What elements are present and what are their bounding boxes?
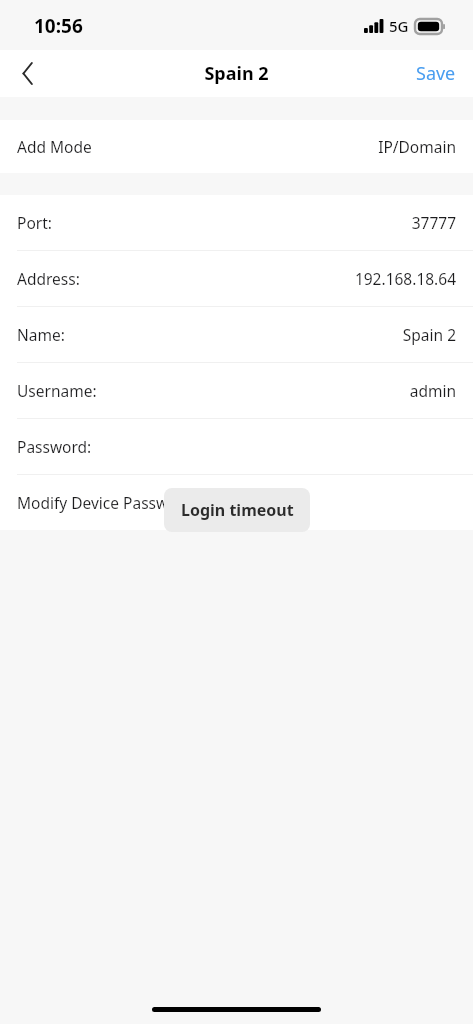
staticText: Save: [416, 61, 456, 86]
staticText: Modify Device Password: [17, 492, 194, 513]
button[interactable]: Back: [0, 50, 56, 97]
staticText: Address:: [17, 268, 80, 289]
staticText: 37777: [411, 212, 456, 233]
staticText: admin: [409, 380, 456, 401]
button[interactable]: Password:: [0, 419, 473, 474]
button[interactable]: Save: [399, 50, 473, 97]
button[interactable]: Username:: [0, 363, 473, 418]
staticText: Login timeout: [181, 499, 294, 521]
staticText: Name:: [17, 324, 65, 345]
staticText: 192.168.18.64: [354, 268, 456, 289]
button[interactable]: Port:: [0, 195, 473, 250]
staticText: 5G: [389, 16, 409, 36]
button[interactable]: Address:: [0, 251, 473, 306]
staticText: 10:56: [34, 13, 83, 39]
staticText: Spain 2: [402, 324, 456, 345]
staticText: Port:: [17, 212, 52, 233]
staticText: IP/Domain: [378, 136, 456, 157]
staticText: Password:: [17, 436, 92, 457]
staticText: Username:: [17, 380, 97, 401]
button[interactable]: Add Mode: [0, 120, 473, 173]
staticText: Spain 2: [204, 61, 269, 86]
button[interactable]: Modify Device Password: [0, 475, 473, 530]
staticText: Add Mode: [17, 136, 92, 157]
button[interactable]: Name:: [0, 307, 473, 362]
